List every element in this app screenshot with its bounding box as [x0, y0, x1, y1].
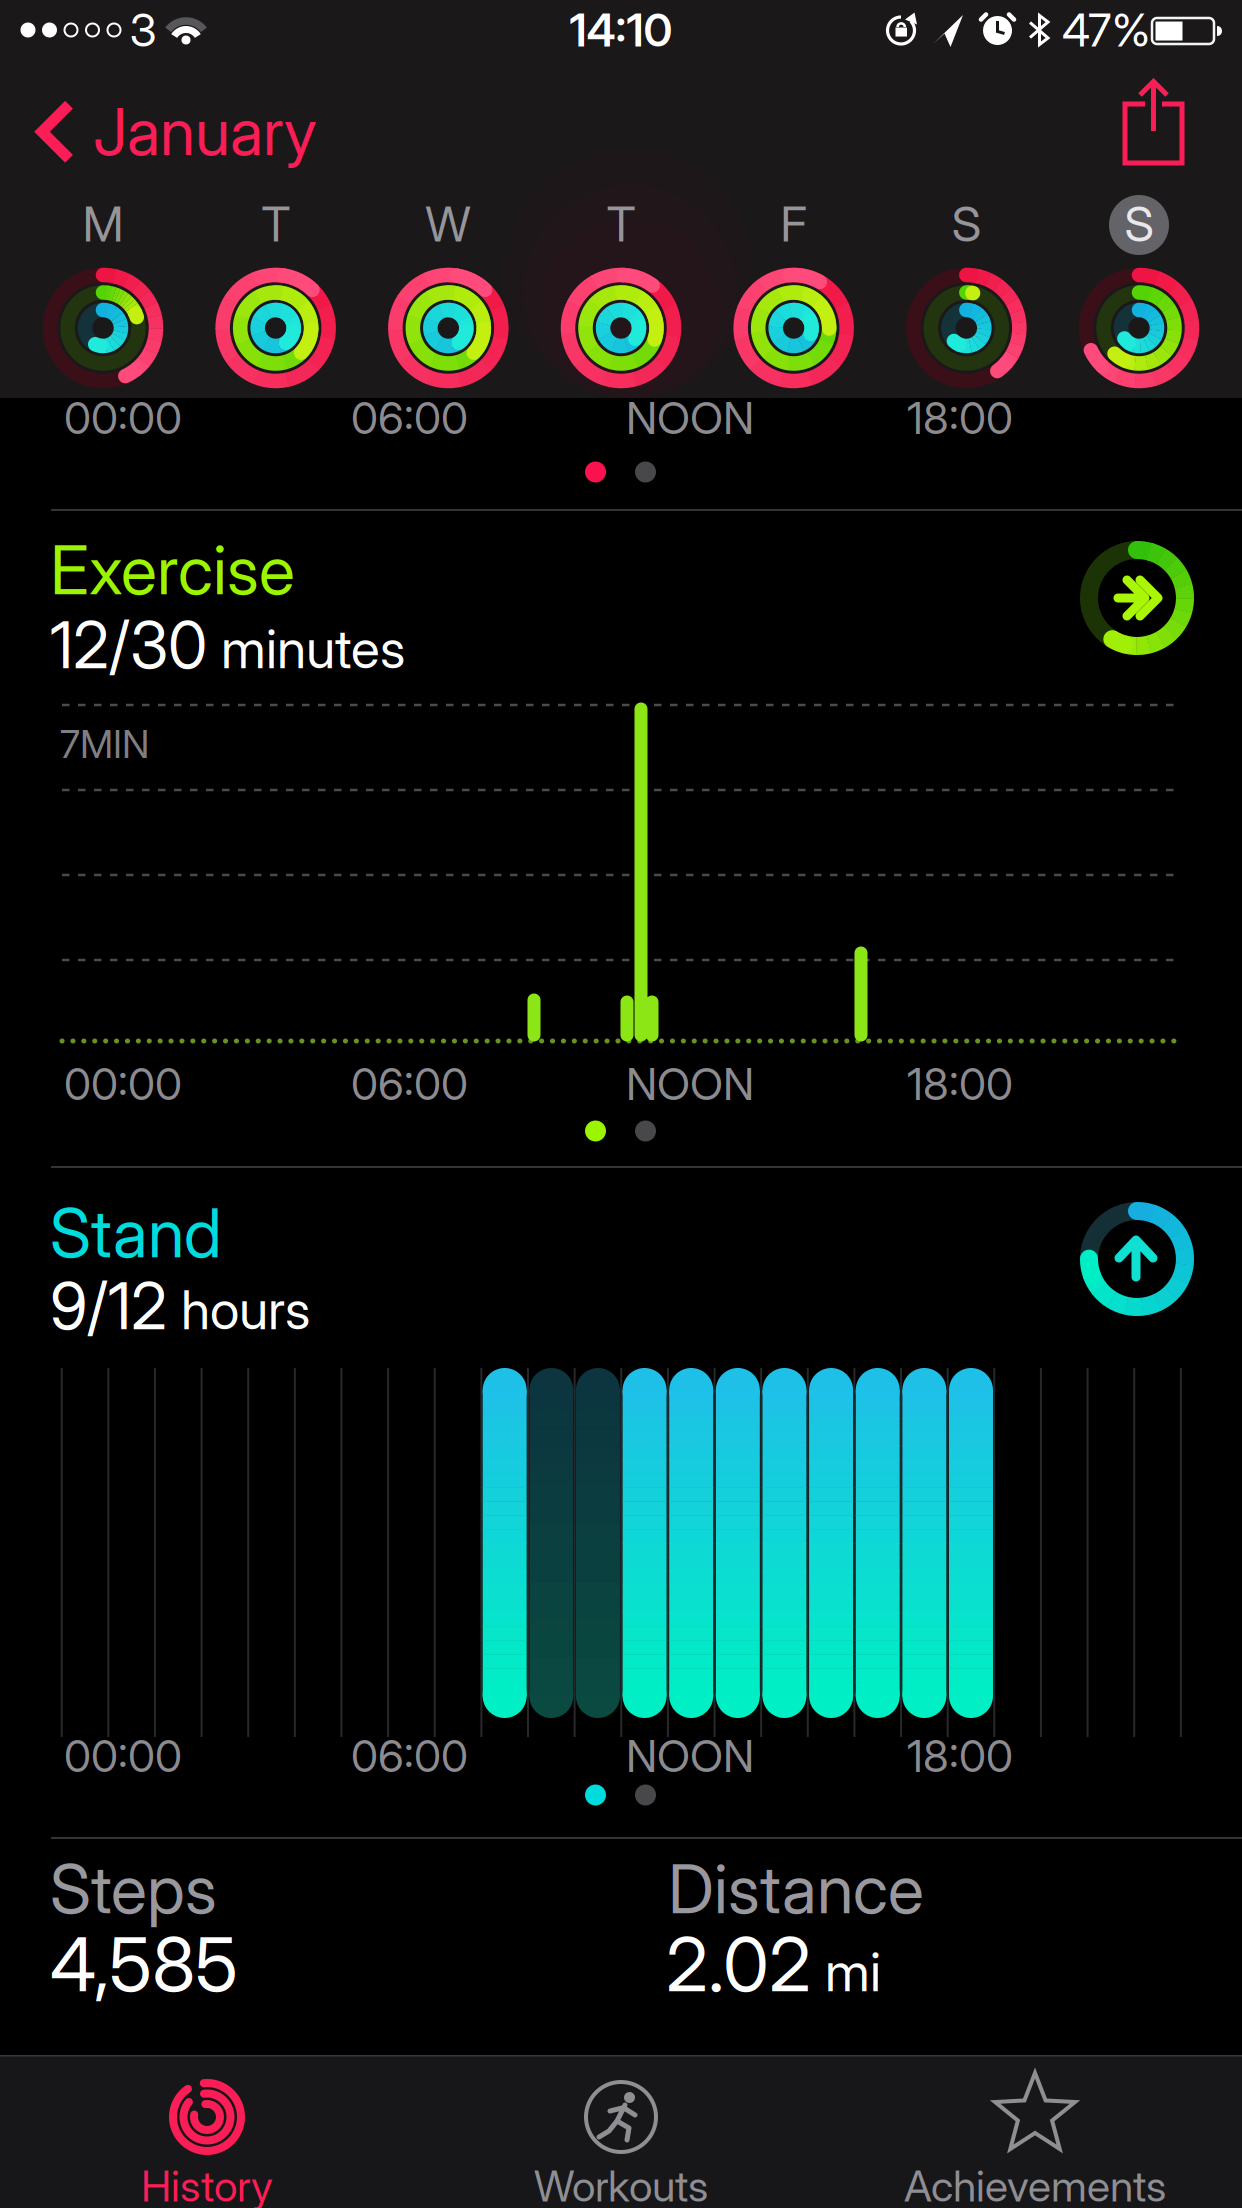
staticText: 2.02 [666, 1920, 811, 2008]
staticText: History [141, 2161, 273, 2208]
button[interactable]: Monday [28, 195, 178, 395]
staticText: 06:00 [351, 392, 468, 444]
button[interactable]: Exercise detail [1079, 540, 1195, 656]
staticText: 14:10 [569, 3, 672, 57]
button[interactable]: Friday [719, 195, 869, 395]
staticText: Stand [50, 1194, 222, 1272]
staticText: 18:00 [907, 1058, 1013, 1110]
staticText: minutes [221, 617, 405, 680]
staticText: 3 [129, 3, 156, 57]
staticText: S [952, 196, 981, 252]
staticText: Exercise [50, 531, 295, 609]
staticText: January [93, 94, 317, 169]
staticText: mi [825, 1940, 881, 2003]
staticText: T [606, 196, 635, 252]
button[interactable]: History [107, 2055, 307, 2208]
staticText: 06:00 [351, 1058, 468, 1110]
button[interactable]: Thursday [546, 195, 696, 395]
staticText: 18:00 [907, 392, 1013, 444]
staticText: 9/12 [50, 1268, 167, 1344]
staticText: 00:00 [64, 1730, 182, 1782]
staticText: T [261, 196, 290, 252]
staticText: hours [181, 1278, 310, 1341]
button[interactable]: Saturday [891, 195, 1041, 395]
button[interactable]: Workouts [521, 2055, 721, 2208]
staticText: W [425, 196, 471, 252]
staticText: NOON [626, 1058, 754, 1110]
staticText: Workouts [534, 2161, 708, 2208]
staticText: S [1124, 196, 1153, 252]
button[interactable]: Stand detail [1079, 1201, 1195, 1317]
button[interactable]: Achievements [935, 2055, 1135, 2208]
staticText: 18:00 [907, 1730, 1013, 1782]
staticText: F [780, 196, 807, 252]
button[interactable]: Tuesday [201, 195, 351, 395]
staticText: 06:00 [351, 1730, 468, 1782]
staticText: 47% [1062, 3, 1150, 57]
staticText: 7MIN [60, 721, 149, 767]
button[interactable]: Wednesday [373, 195, 523, 395]
button[interactable]: Sunday [1064, 195, 1214, 395]
staticText: 4,585 [50, 1920, 238, 2008]
staticText: NOON [626, 392, 754, 444]
staticText: 00:00 [64, 1058, 182, 1110]
staticText: Steps [50, 1850, 217, 1928]
staticText: 00:00 [64, 392, 182, 444]
staticText: M [82, 196, 123, 252]
staticText: Distance [668, 1850, 924, 1928]
staticText: NOON [626, 1730, 754, 1782]
button[interactable]: Share [1123, 79, 1184, 166]
staticText: Achievements [904, 2161, 1166, 2208]
staticText: 12/30 [50, 607, 207, 683]
button[interactable]: January [36, 94, 317, 169]
